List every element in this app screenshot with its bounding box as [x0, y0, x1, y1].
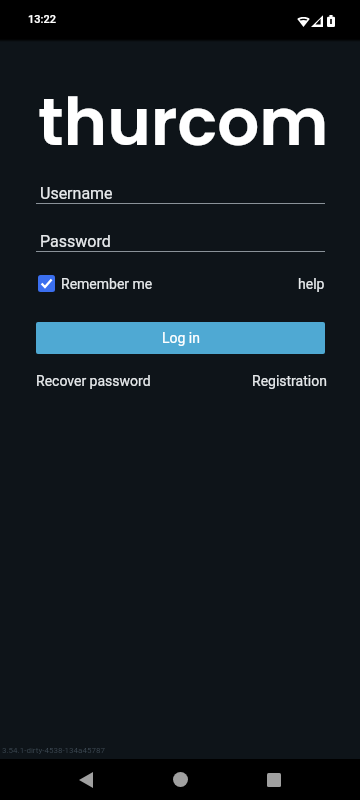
button[interactable]: Registration	[252, 373, 327, 389]
button[interactable]: Home	[156, 759, 204, 800]
staticText: thurcom	[38, 76, 329, 168]
button[interactable]: help	[298, 276, 325, 292]
staticText: Remember me	[61, 276, 153, 292]
button[interactable]: Log in	[36, 322, 325, 354]
staticText: Password	[40, 232, 111, 251]
staticText: Registration	[252, 373, 327, 389]
button[interactable]: Username	[36, 184, 325, 204]
staticText: Log in	[162, 330, 200, 346]
staticText: Recover password	[36, 373, 151, 389]
button[interactable]: Recent apps	[250, 759, 298, 800]
staticText: 13:22	[28, 13, 56, 26]
staticText: Username	[40, 184, 113, 203]
button[interactable]: Back	[62, 759, 110, 800]
staticText: 3.54.1-dirty-4538-134a45787	[2, 746, 105, 755]
button[interactable]: Remember me	[38, 275, 155, 292]
button[interactable]: Password	[36, 232, 325, 252]
button[interactable]: Recover password	[36, 373, 151, 389]
staticText: help	[298, 276, 325, 292]
